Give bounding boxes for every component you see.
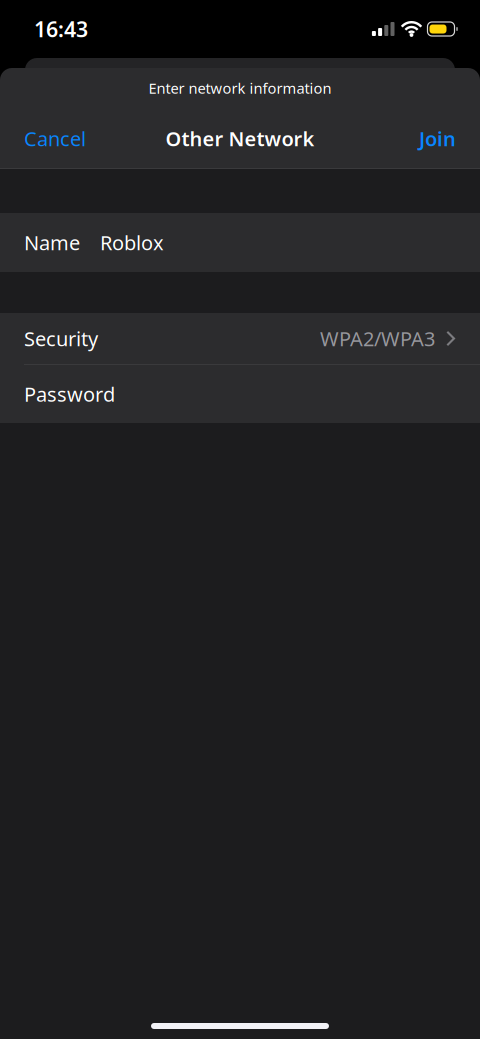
staticText: 16:43 (34, 15, 88, 43)
staticText: Security (24, 325, 98, 352)
staticText: Roblox (100, 229, 164, 256)
staticText: Name (24, 229, 80, 256)
staticText: WPA2/WPA3 (320, 325, 435, 352)
button[interactable]: Security (0, 313, 480, 364)
button[interactable]: Join (419, 125, 456, 152)
staticText: Enter network information (148, 78, 331, 98)
staticText: Join (419, 125, 456, 152)
staticText: Password (24, 381, 115, 407)
staticText: Cancel (24, 125, 86, 152)
button[interactable]: Password (0, 365, 480, 423)
staticText: Other Network (165, 125, 314, 152)
button[interactable]: Name (0, 213, 480, 272)
button[interactable]: Cancel (24, 125, 86, 152)
